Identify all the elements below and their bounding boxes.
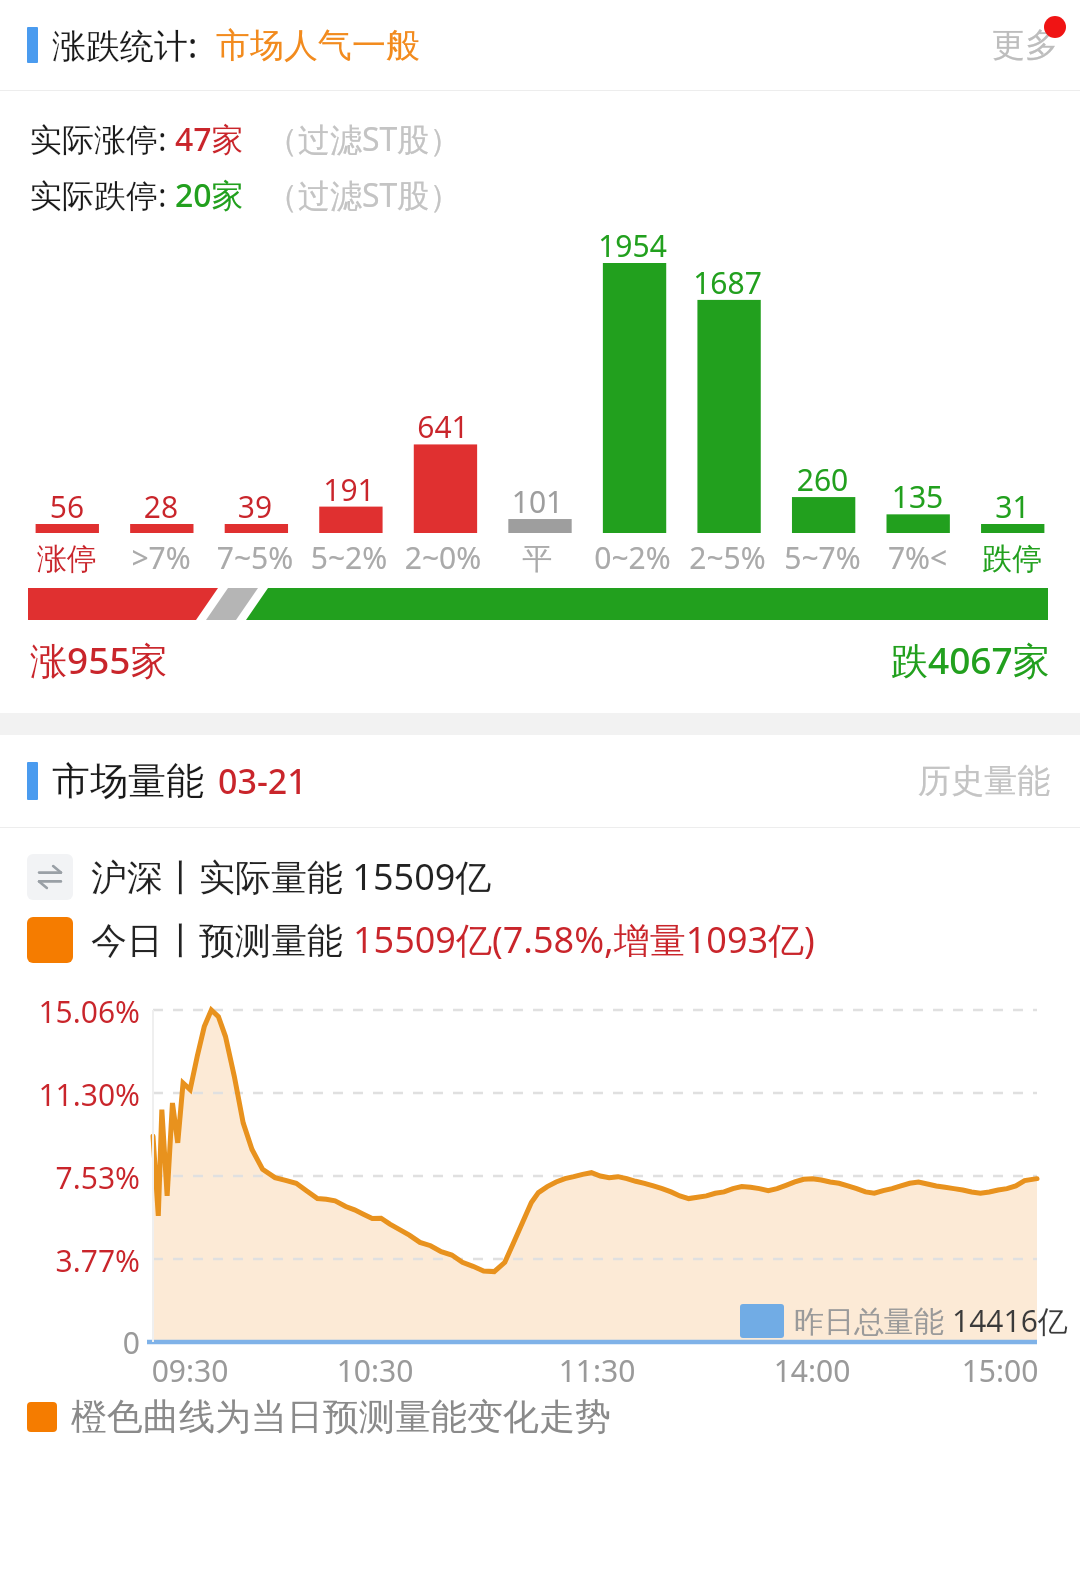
- staticText: 市场量能: [52, 757, 204, 805]
- button[interactable]: 涨跌统计:: [0, 0, 1080, 90]
- staticText: 101: [490, 481, 585, 522]
- staticText: 10:30: [295, 1350, 455, 1391]
- button[interactable]: 市场量能: [0, 735, 1080, 827]
- staticText: 14416亿: [952, 1300, 1068, 1341]
- staticText: 20家: [175, 173, 244, 217]
- staticText: 跌4067家: [891, 634, 1050, 685]
- staticText: 0~2%: [585, 537, 680, 578]
- staticText: 15.06%: [0, 991, 140, 1032]
- staticText: 09:30: [110, 1350, 270, 1391]
- staticText: 平: [490, 540, 585, 578]
- staticText: 47家: [175, 117, 244, 161]
- staticText: 更多: [992, 24, 1058, 66]
- staticText: 0: [0, 1322, 140, 1363]
- staticText: 涨955家: [30, 634, 168, 685]
- staticText: 31: [965, 486, 1060, 527]
- staticText: 昨日总量能: [794, 1300, 952, 1341]
- staticText: 260: [775, 459, 870, 500]
- staticText: 3.77%: [0, 1240, 140, 1281]
- staticText: >7%: [114, 537, 208, 578]
- staticText: 135: [870, 476, 965, 517]
- staticText: 15:00: [920, 1350, 1080, 1391]
- staticText: 641: [396, 406, 490, 447]
- staticText: 5~7%: [775, 537, 870, 578]
- staticText: 1954: [585, 225, 680, 266]
- staticText: （过滤ST股）: [266, 173, 462, 217]
- staticText: 39: [208, 486, 302, 527]
- staticText: 橙色曲线为当日预测量能变化走势: [71, 1394, 611, 1439]
- staticText: 191: [302, 469, 396, 510]
- staticText: 今日丨预测量能: [91, 915, 353, 964]
- staticText: 56: [20, 486, 114, 527]
- staticText: 7~5%: [208, 537, 302, 578]
- staticText: 市场人气一般: [216, 24, 420, 67]
- staticText: 03-21: [218, 758, 307, 804]
- staticText: 11:30: [517, 1350, 677, 1391]
- staticText: 2~5%: [680, 537, 775, 578]
- staticText: 2~0%: [396, 537, 490, 578]
- staticText: （过滤ST股）: [266, 117, 462, 161]
- staticText: 5~2%: [302, 537, 396, 578]
- staticText: 历史量能: [918, 760, 1050, 802]
- staticText: 实际跌停:: [30, 173, 167, 217]
- staticText: 7.53%: [0, 1157, 140, 1198]
- staticText: 涨跌统计:: [52, 22, 198, 68]
- staticText: 沪深丨实际量能 15509亿: [91, 852, 492, 901]
- staticText: 1687: [680, 262, 775, 303]
- staticText: 14:00: [732, 1350, 892, 1391]
- staticText: 7%<: [870, 537, 965, 578]
- staticText: 11.30%: [0, 1074, 140, 1115]
- staticText: 涨停: [20, 540, 114, 578]
- staticText: 实际涨停:: [30, 117, 167, 161]
- staticText: 15509亿(7.58%,增量1093亿): [353, 915, 815, 964]
- staticText: 28: [114, 486, 208, 527]
- staticText: 跌停: [965, 540, 1060, 578]
